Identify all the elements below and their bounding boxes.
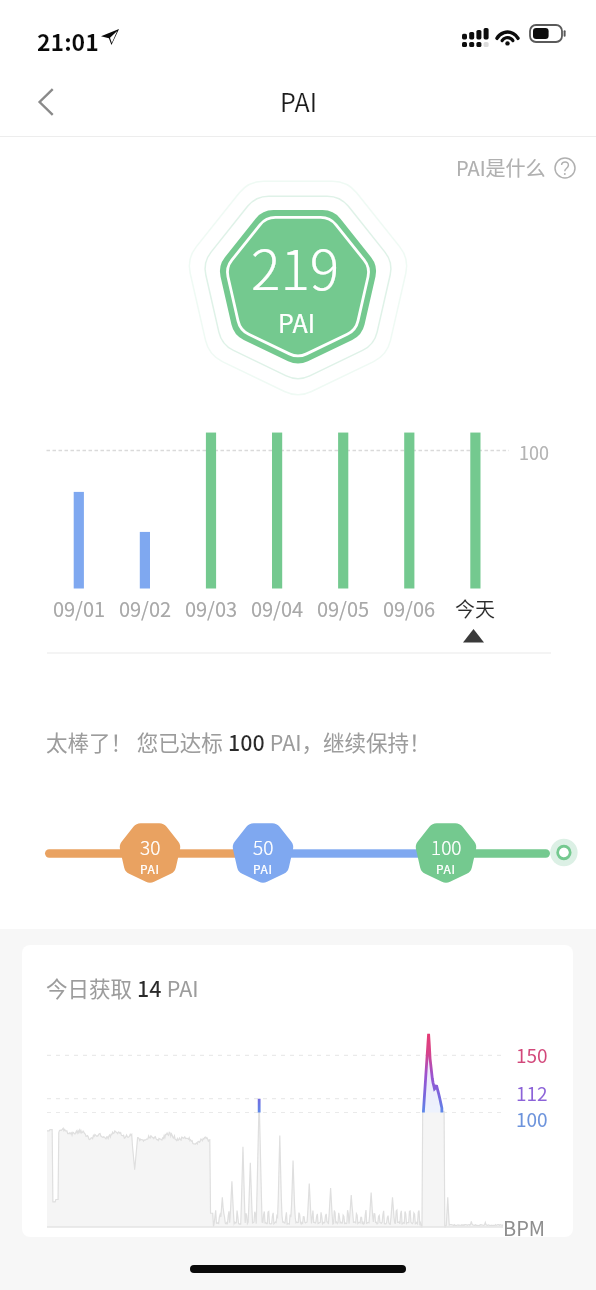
staticText: 太棒了！ 您已达标 [46,726,228,757]
staticText: BPM [503,1213,546,1237]
staticText: PAI，继续保持！ [265,726,431,757]
staticText: 219 [251,226,340,306]
staticText: 今日获取 [46,972,137,1003]
staticText: 14 [137,972,162,1003]
button[interactable]: 30 [0,810,596,900]
button[interactable]: PAI是什么 [450,147,582,188]
staticText: 09/02 [111,594,179,623]
staticText: 09/04 [243,594,311,623]
staticText: 21:01 [37,24,99,57]
staticText: 50 [253,833,274,861]
staticText: PAI [280,83,317,119]
staticText: PAI是什么 [456,153,546,182]
staticText: PAI [162,972,199,1003]
staticText: 09/06 [375,594,443,623]
staticText: 09/05 [309,594,377,623]
button[interactable]: 今日获取 [22,945,573,1237]
staticText: 100 [519,439,549,465]
staticText: 100 [431,833,462,861]
staticText: PAI [253,860,273,877]
staticText: PAI [278,304,315,340]
staticText: 150 [516,1041,548,1069]
staticText: 今天 [441,594,509,623]
staticText: PAI [436,860,456,877]
staticText: 100 [516,1105,548,1133]
button[interactable]: Back [10,66,82,137]
staticText: 30 [140,833,161,861]
staticText: 09/01 [45,594,113,623]
staticText: 09/03 [177,594,245,623]
staticText: 100 [228,726,265,757]
staticText: PAI [140,860,160,877]
staticText: 112 [516,1079,548,1107]
